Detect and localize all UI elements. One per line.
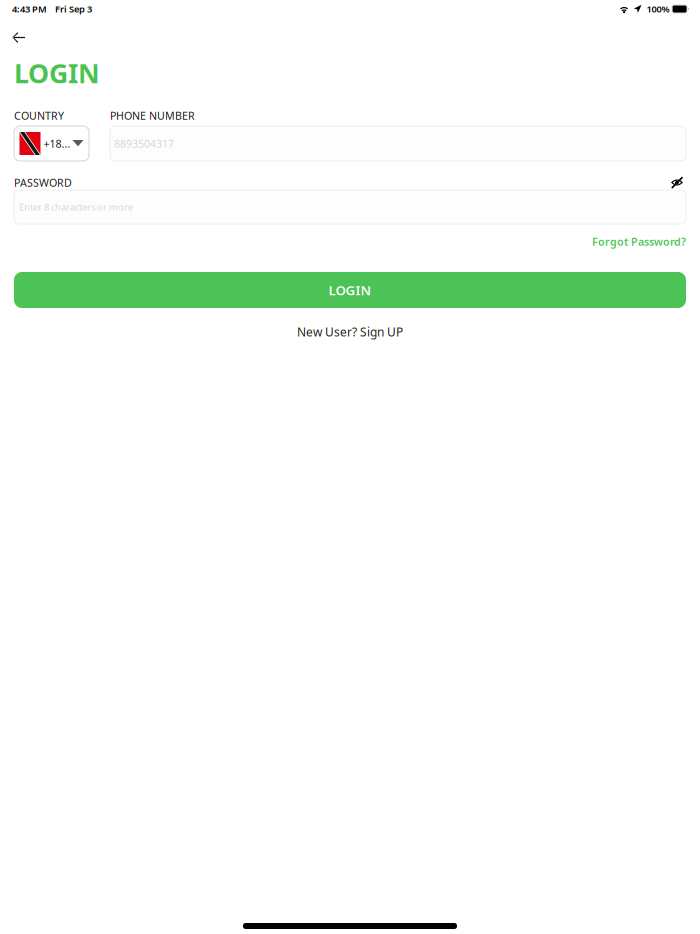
staticText: Enter 8 characters or more [19, 201, 133, 213]
button[interactable]: Show password [665, 176, 686, 189]
staticText: 100% [647, 3, 670, 15]
staticText: 4:43 PM [12, 3, 47, 15]
staticText: LOGIN [328, 281, 371, 299]
staticText: PASSWORD [14, 175, 72, 190]
staticText: New User? Sign UP [297, 324, 403, 340]
staticText: Fri Sep 3 [55, 3, 92, 15]
staticText: COUNTRY [14, 108, 64, 123]
button[interactable]: Back [0, 18, 35, 50]
staticText: Forgot Password? [592, 234, 686, 249]
staticText: +18... [43, 136, 70, 151]
button[interactable]: +18... [14, 126, 89, 161]
staticText: LOGIN [14, 55, 100, 91]
button[interactable]: LOGIN [14, 272, 686, 308]
staticText: PHONE NUMBER [110, 108, 195, 123]
staticText: 8893504317 [114, 136, 174, 151]
button[interactable]: New User? Sign UP [297, 321, 403, 343]
button[interactable]: Forgot Password? [592, 231, 686, 252]
